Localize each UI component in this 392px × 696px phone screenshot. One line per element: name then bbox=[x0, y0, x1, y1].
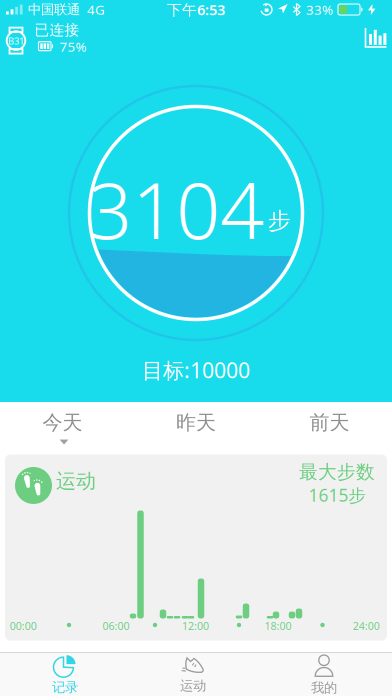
staticText: 记录 bbox=[52, 679, 78, 696]
button[interactable]: 已连接的设备 bbox=[0, 19, 110, 57]
staticText: 中国联通 bbox=[28, 1, 80, 18]
staticText: 目标:10000 bbox=[142, 356, 250, 384]
staticText: 下午6:53 bbox=[167, 0, 225, 19]
button[interactable]: 统计图表 bbox=[364, 28, 388, 48]
button[interactable]: 昨天 bbox=[125, 400, 267, 445]
staticText: 最大步数 bbox=[299, 460, 375, 483]
button[interactable]: 我的 bbox=[258, 653, 389, 696]
button[interactable]: 今天 bbox=[0, 400, 125, 445]
staticText: 12:00 bbox=[182, 619, 209, 633]
staticText: 今天 bbox=[42, 410, 82, 435]
staticText: 3104 bbox=[88, 158, 264, 260]
staticText: 06:00 bbox=[102, 619, 129, 633]
staticText: 1615步 bbox=[308, 483, 365, 506]
staticText: 4G bbox=[87, 1, 105, 18]
button[interactable]: 记录 bbox=[2, 653, 127, 696]
staticText: 00:00 bbox=[10, 619, 37, 633]
staticText: 步 bbox=[268, 207, 291, 235]
staticText: 前天 bbox=[309, 410, 349, 435]
staticText: 昨天 bbox=[176, 410, 216, 435]
staticText: 24:00 bbox=[353, 619, 380, 633]
staticText: 75% bbox=[59, 38, 86, 55]
staticText: B31 bbox=[8, 35, 24, 47]
staticText: 运动 bbox=[56, 469, 96, 493]
staticText: 我的 bbox=[311, 680, 337, 696]
staticText: 33% bbox=[306, 1, 333, 18]
staticText: 18:00 bbox=[264, 619, 291, 633]
staticText: 已连接 bbox=[34, 21, 79, 39]
button[interactable]: 前天 bbox=[267, 400, 392, 445]
staticText: 运动 bbox=[180, 678, 206, 694]
button[interactable]: 运动 bbox=[127, 653, 258, 696]
